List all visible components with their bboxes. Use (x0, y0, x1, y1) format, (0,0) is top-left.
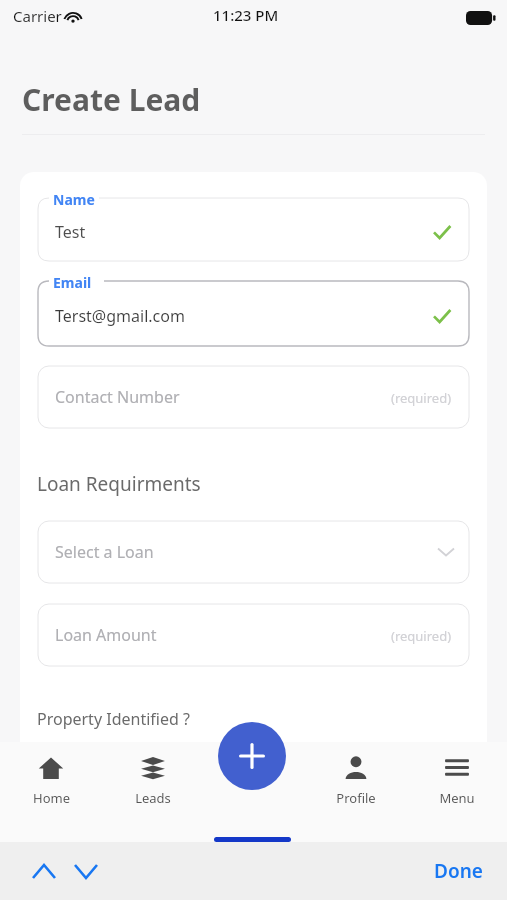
staticText: 11:23 PM (213, 5, 279, 25)
button[interactable]: Name (38, 198, 469, 261)
staticText: Leads (135, 789, 171, 807)
button[interactable]: Menu (406, 755, 507, 837)
staticText: (required) (391, 389, 452, 407)
button[interactable]: Profile (305, 755, 406, 837)
staticText: Terst@gmail.com (55, 305, 185, 327)
staticText: Menu (439, 789, 475, 807)
staticText: Carrier (13, 6, 62, 26)
staticText: Test (55, 221, 86, 243)
button[interactable]: Leads (102, 755, 204, 837)
staticText: Name (53, 190, 95, 209)
button[interactable]: Previous field (22, 849, 66, 893)
staticText: Loan Requirments (37, 471, 201, 497)
button[interactable]: Contact Number (38, 366, 469, 428)
staticText: Home (33, 789, 70, 807)
button[interactable]: Done (428, 850, 489, 892)
button[interactable]: Yes (36, 744, 99, 772)
button[interactable]: Email (38, 281, 469, 346)
staticText: Property Identified ? (37, 708, 190, 730)
staticText: Create Lead (22, 79, 201, 120)
staticText: (required) (391, 627, 452, 645)
button[interactable]: Add (218, 722, 286, 790)
button[interactable]: Next field (64, 849, 108, 893)
button[interactable]: Home (0, 755, 102, 837)
staticText: Select a Loan (55, 541, 154, 563)
button[interactable]: Select a Loan (38, 521, 469, 583)
button[interactable]: Loan Amount (38, 604, 469, 666)
staticText: Profile (336, 789, 376, 807)
staticText: Email (53, 273, 92, 292)
staticText: Contact Number (55, 386, 180, 408)
staticText: Done (434, 858, 483, 884)
staticText: Loan Amount (55, 624, 157, 646)
